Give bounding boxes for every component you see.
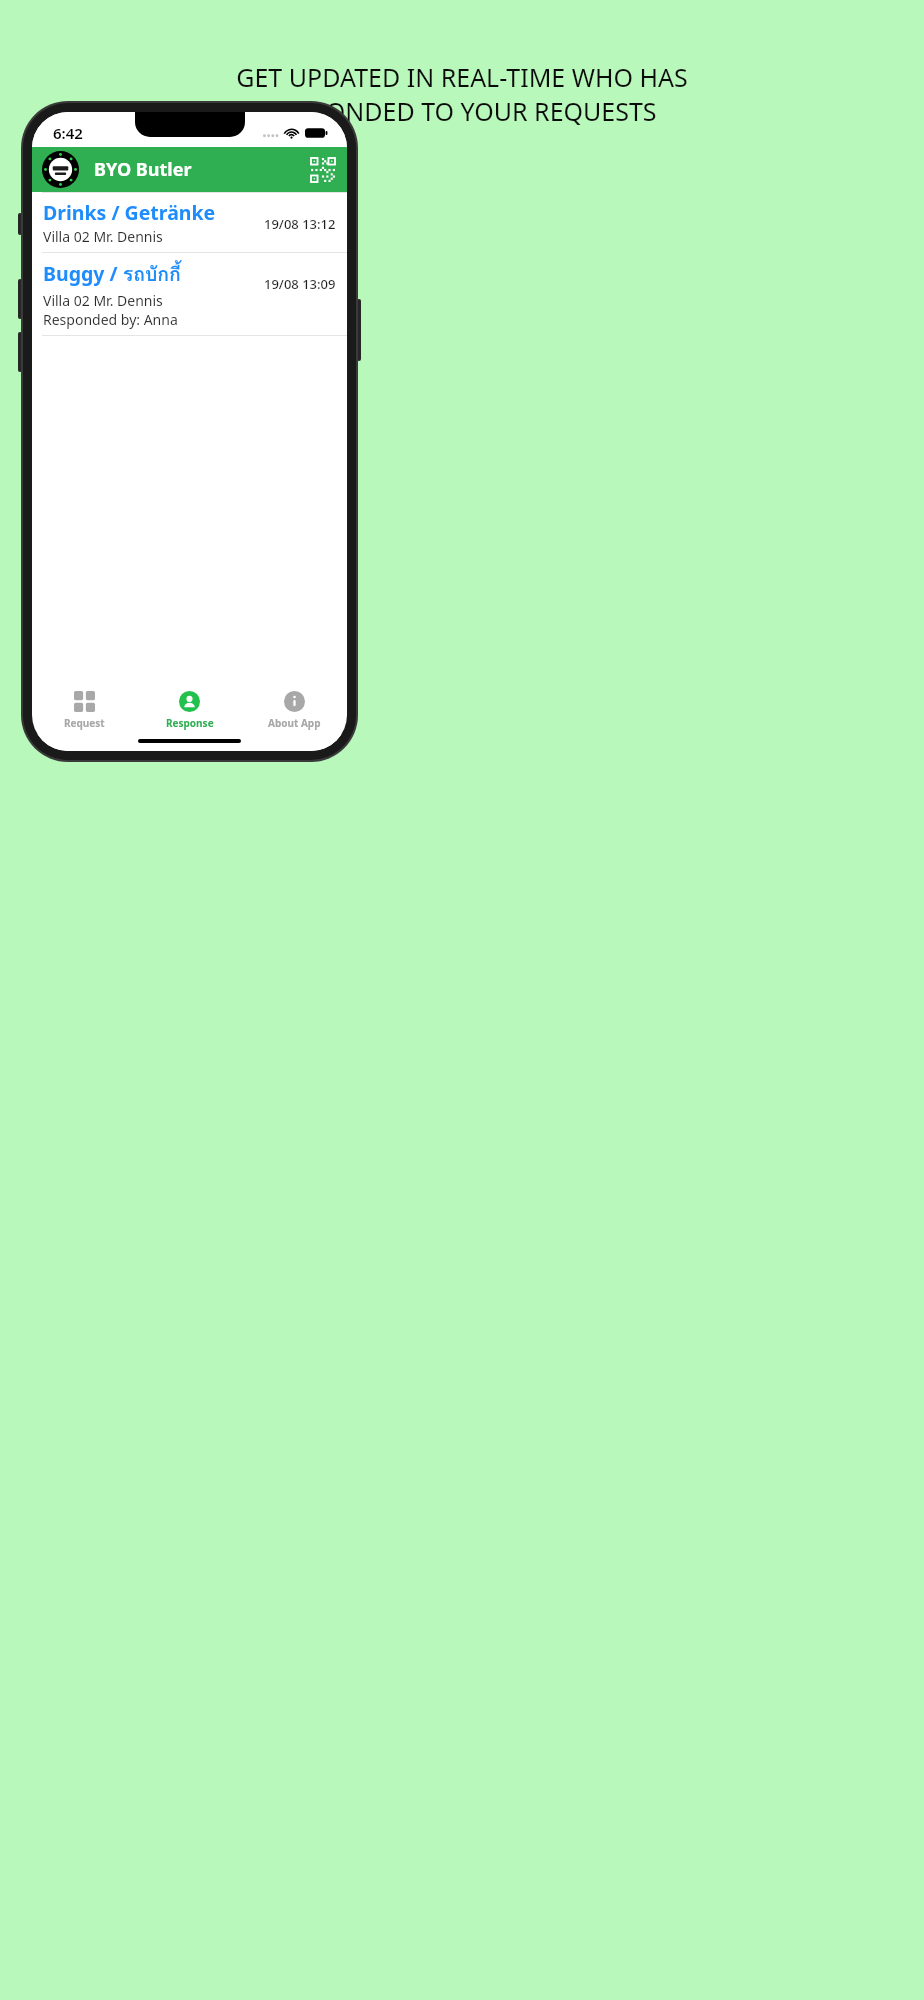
button[interactable]: Buggy / รถบักกี้	[32, 253, 347, 335]
staticText: Villa 02 Mr. Dennis	[43, 291, 163, 310]
button[interactable]: Drinks / Getränke	[32, 193, 347, 252]
staticText: Drinks / Getränke	[43, 199, 216, 226]
staticText: BYO Butler	[94, 157, 192, 182]
button[interactable]: Response	[137, 686, 242, 734]
button[interactable]: Scan QR code	[309, 156, 337, 184]
staticText: RESPONDED TO YOUR REQUESTS	[20, 94, 904, 128]
staticText: Response	[166, 716, 214, 730]
staticText: Request	[64, 716, 105, 730]
staticText: Responded by: Anna	[43, 310, 178, 329]
button[interactable]: BYO Butler home	[42, 151, 79, 188]
staticText: 6:42	[53, 123, 83, 143]
staticText: About App	[268, 716, 321, 730]
button[interactable]: About App	[242, 686, 347, 734]
button[interactable]: Request	[32, 686, 137, 734]
staticText: GET UPDATED IN REAL-TIME WHO HAS	[20, 60, 904, 94]
staticText: Buggy / รถบักกี้	[43, 259, 181, 290]
staticText: Villa 02 Mr. Dennis	[43, 227, 163, 246]
staticText: 19/08 13:12	[264, 215, 336, 233]
staticText: 19/08 13:09	[264, 275, 336, 293]
